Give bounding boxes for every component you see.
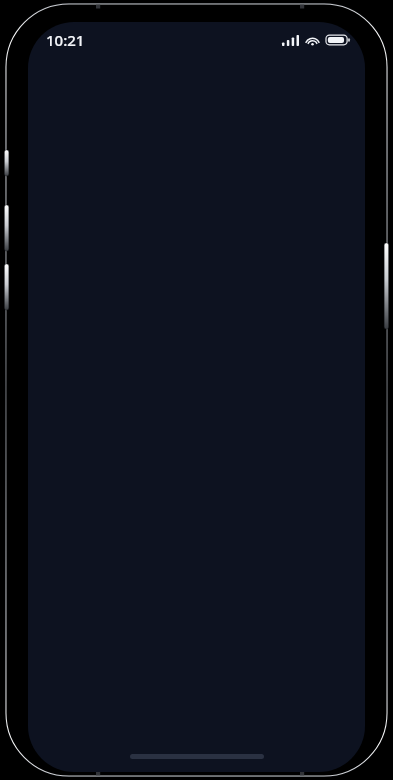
staticText: 10:21 (46, 30, 85, 50)
